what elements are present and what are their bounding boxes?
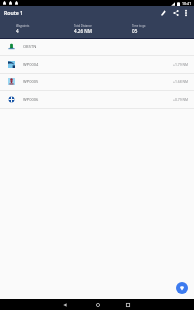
staticText: WP0004	[23, 62, 39, 67]
staticText: Total Distance	[74, 24, 92, 28]
button[interactable]: WP0004	[0, 56, 194, 73]
button[interactable]: Recents	[122, 299, 133, 310]
button[interactable]: More options	[180, 6, 192, 19]
staticText: Waypoints	[16, 24, 30, 28]
staticText: +1.68 NM	[173, 79, 189, 84]
staticText: Time to go	[132, 24, 146, 28]
staticText: +0.79 NM	[173, 97, 189, 102]
button[interactable]: Add waypoint	[176, 282, 188, 294]
staticText: OBSTN	[23, 44, 37, 49]
staticText: 05	[132, 28, 138, 34]
button[interactable]: WP0006	[0, 91, 194, 108]
staticText: +1.79 NM	[173, 62, 189, 67]
button[interactable]: Home	[92, 299, 103, 310]
staticText: 10:41	[182, 1, 192, 6]
staticText: 4	[16, 28, 19, 34]
button[interactable]: Back	[59, 299, 70, 310]
staticText: Route 1	[4, 9, 23, 16]
button[interactable]: Edit	[157, 6, 169, 19]
staticText: 4.26 NM	[74, 28, 92, 34]
button[interactable]: OBSTN	[0, 38, 194, 55]
staticText: WP0006	[23, 97, 39, 102]
button[interactable]: WP0005	[0, 73, 194, 90]
staticText: WP0005	[23, 79, 39, 84]
button[interactable]: Share	[170, 6, 182, 19]
